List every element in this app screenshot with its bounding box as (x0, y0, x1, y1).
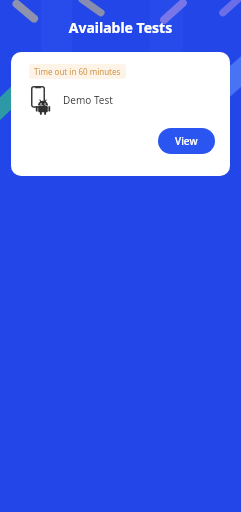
staticText: View (175, 134, 198, 148)
staticText: Available Tests (0, 18, 241, 37)
other: Android device (31, 86, 51, 114)
button[interactable]: View (158, 128, 215, 154)
button[interactable]: Time out in 60 minutes (11, 52, 230, 176)
staticText: Time out in 60 minutes (34, 66, 121, 77)
staticText: Demo Test (63, 93, 113, 107)
